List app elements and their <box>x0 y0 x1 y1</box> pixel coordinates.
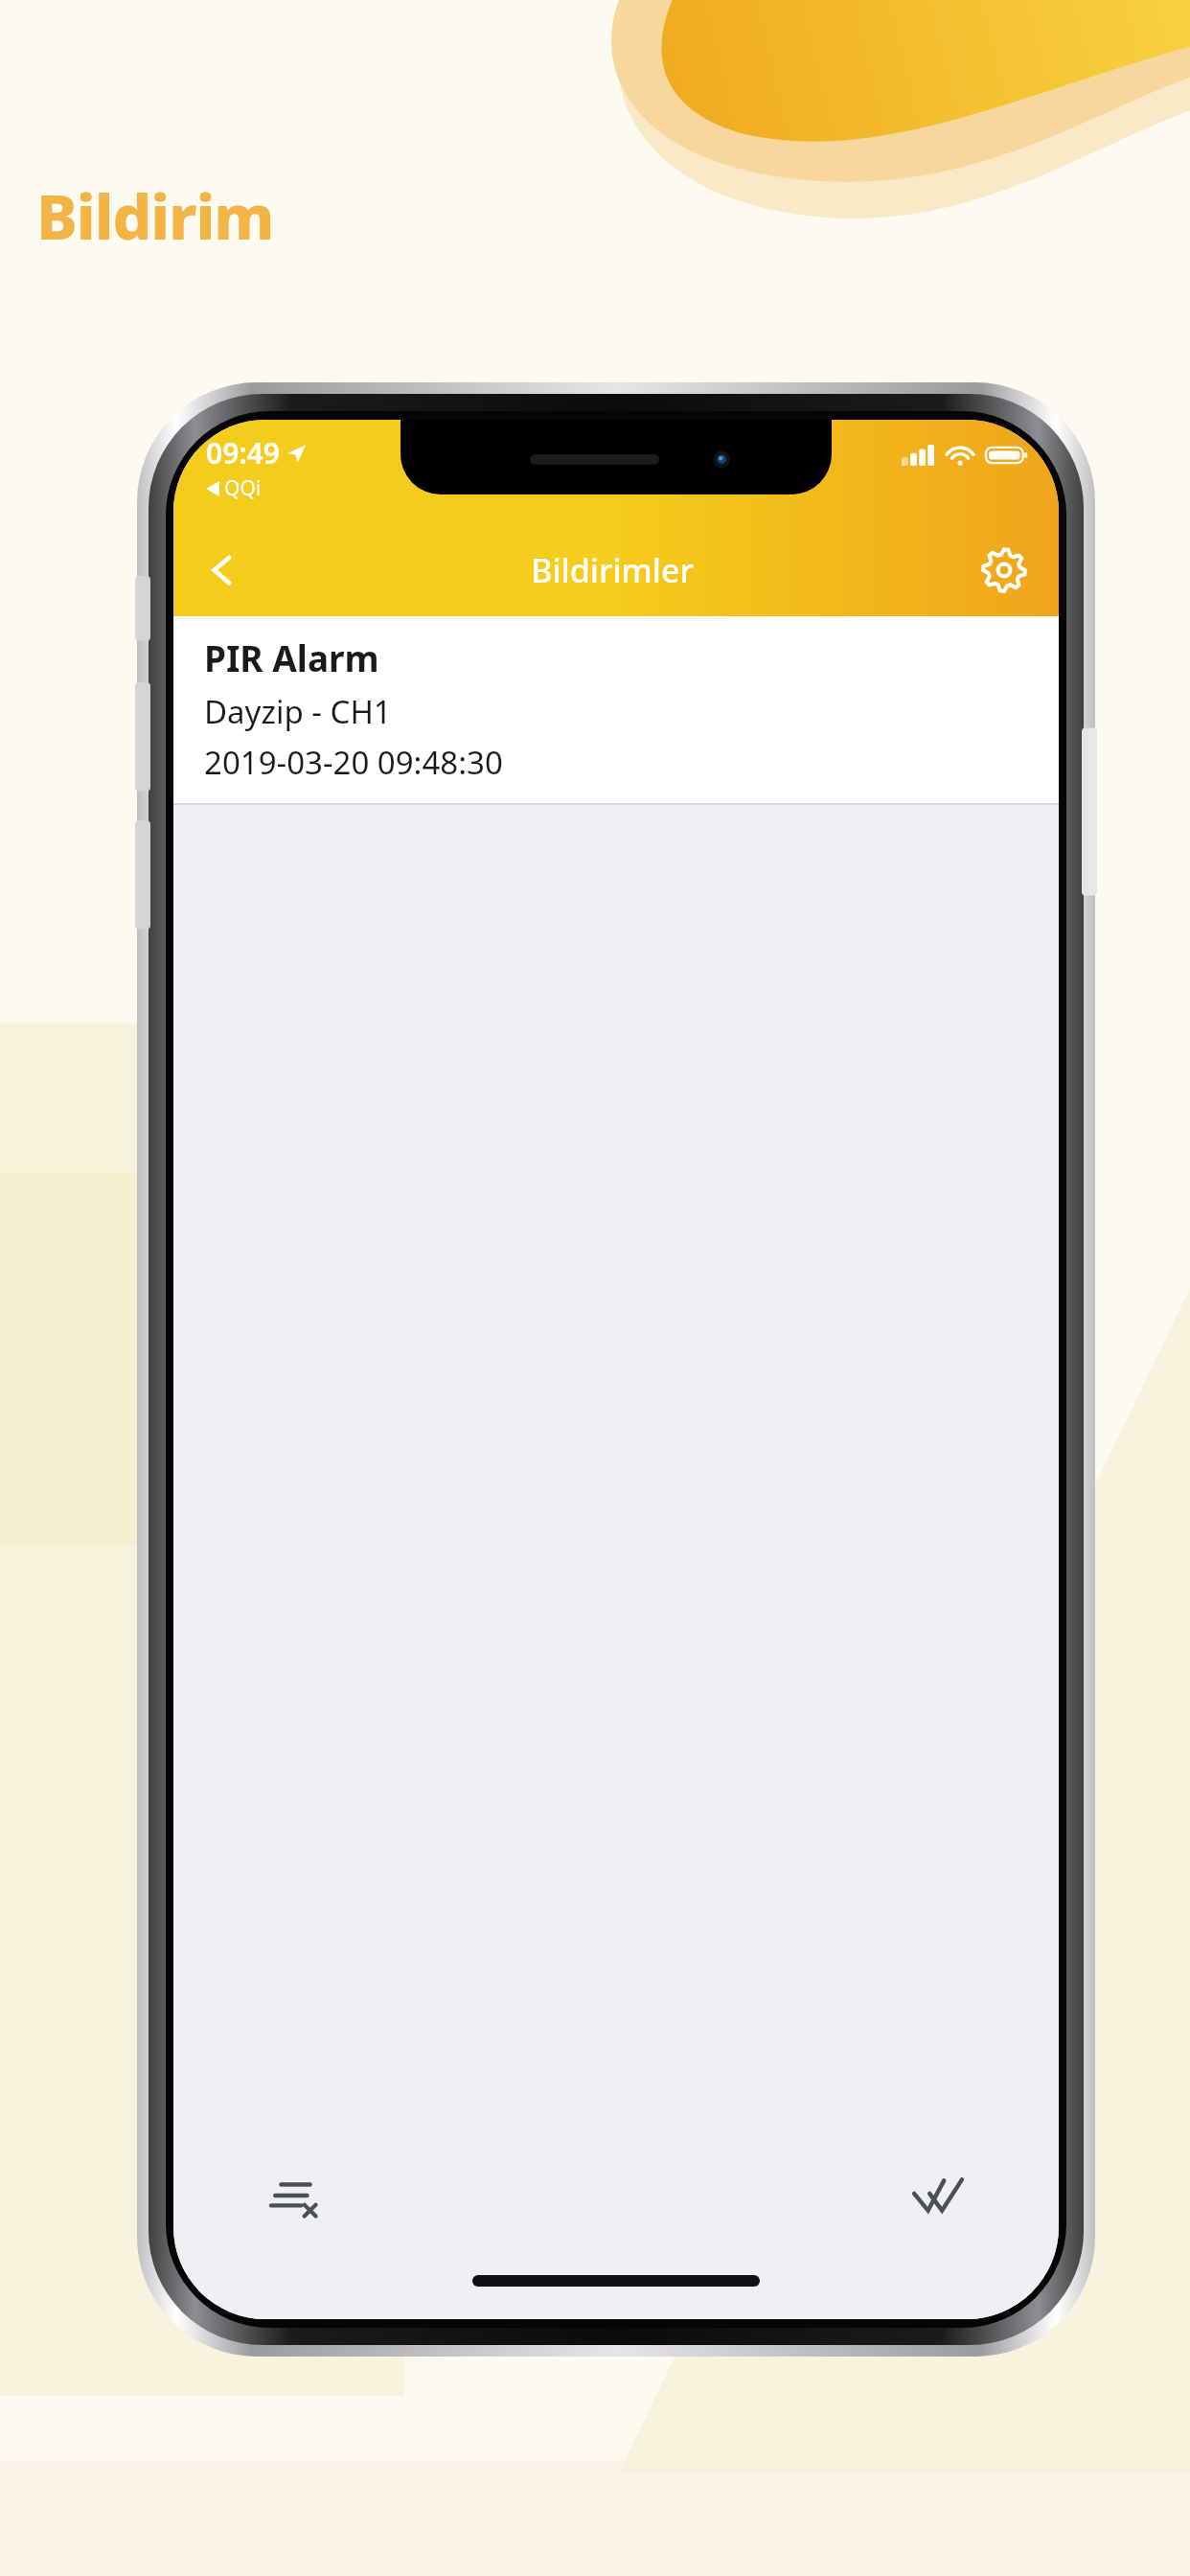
staticText: QQi <box>224 474 262 502</box>
button[interactable]: Clear all notifications <box>252 2152 338 2239</box>
button[interactable]: PIR Alarm <box>173 616 1059 803</box>
button[interactable]: Back <box>187 535 258 606</box>
staticText: 2019-03-20 09:48:30 <box>204 741 503 784</box>
button[interactable]: Settings <box>967 533 1041 608</box>
staticText: Dayzip - CH1 <box>204 690 392 733</box>
staticText: Bildirim <box>36 174 274 258</box>
staticText: 09:49 <box>206 433 280 472</box>
staticText: Bildirimler <box>531 548 694 592</box>
staticText: PIR Alarm <box>204 633 379 681</box>
button[interactable]: Mark all as read <box>895 2152 981 2239</box>
